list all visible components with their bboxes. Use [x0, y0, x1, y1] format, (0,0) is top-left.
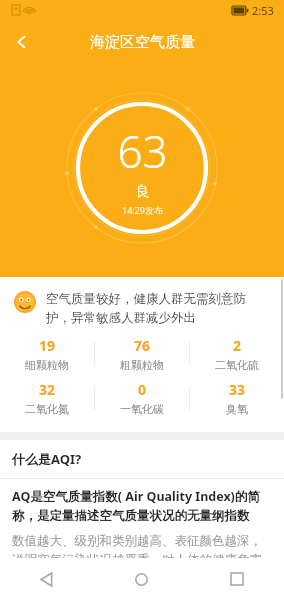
staticText: AQ是空气质量指数( Air Quality Index)的简称，是定量描述空气…: [12, 488, 272, 524]
staticText: 数值越大、级别和类别越高、表征颜色越深，说明空气污染状况越严重，对人体的健康危害…: [12, 533, 272, 558]
button[interactable]: 什么是AQI?: [0, 440, 284, 478]
staticText: 32: [39, 380, 56, 399]
staticText: 2:53: [252, 3, 274, 18]
staticText: 一氧化碳: [120, 402, 164, 416]
button[interactable]: 0: [95, 376, 189, 420]
button[interactable]: 最近任务: [189, 558, 284, 600]
staticText: 海淀区空气质量: [90, 33, 195, 52]
button[interactable]: 76: [95, 332, 189, 376]
button[interactable]: 19: [0, 332, 94, 376]
button[interactable]: 33: [190, 376, 284, 420]
staticText: 2: [233, 336, 242, 355]
staticText: 二氧化硫: [215, 358, 259, 372]
staticText: 0: [138, 380, 147, 399]
staticText: 76: [134, 336, 151, 355]
button[interactable]: 32: [0, 376, 94, 420]
staticText: 粗颗粒物: [120, 358, 164, 372]
staticText: 63: [117, 121, 168, 181]
button[interactable]: 主页: [94, 558, 189, 600]
staticText: 14:29发布: [122, 204, 164, 216]
button[interactable]: 返回: [0, 20, 44, 64]
button[interactable]: 2: [190, 332, 284, 376]
staticText: 33: [229, 380, 246, 399]
staticText: 空气质量较好，健康人群无需刻意防护，异常敏感人群减少外出: [46, 291, 268, 326]
staticText: 良: [136, 183, 150, 201]
staticText: 什么是AQI?: [12, 450, 82, 468]
staticText: 臭氧: [226, 402, 248, 416]
staticText: 二氧化氮: [25, 402, 69, 416]
staticText: 细颗粒物: [25, 358, 69, 372]
staticText: 19: [39, 336, 56, 355]
button[interactable]: 返回: [0, 558, 94, 600]
